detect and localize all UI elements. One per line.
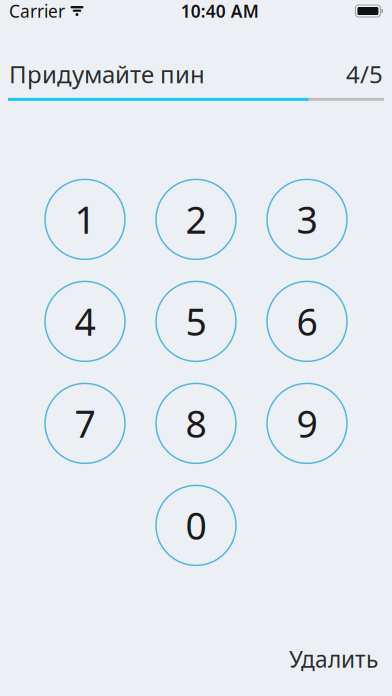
button[interactable]: 9 bbox=[267, 383, 347, 463]
staticText: Удалить bbox=[289, 644, 378, 674]
button[interactable]: 6 bbox=[267, 281, 347, 361]
staticText: Придумайте пин bbox=[9, 58, 205, 90]
staticText: 4/5 bbox=[346, 58, 383, 90]
staticText: 10:40 AM bbox=[181, 0, 259, 22]
staticText: Carrier bbox=[9, 0, 65, 22]
staticText: 7 bbox=[74, 399, 95, 448]
button[interactable]: 4 bbox=[45, 281, 125, 361]
button[interactable]: 3 bbox=[267, 179, 347, 259]
staticText: 1 bbox=[74, 195, 95, 244]
staticText: 2 bbox=[185, 195, 206, 244]
staticText: 8 bbox=[185, 399, 206, 448]
button[interactable]: 0 bbox=[156, 485, 236, 565]
staticText: 3 bbox=[296, 195, 317, 244]
button[interactable]: Удалить bbox=[283, 638, 384, 680]
staticText: 5 bbox=[185, 297, 206, 346]
button[interactable]: 5 bbox=[156, 281, 236, 361]
staticText: 0 bbox=[185, 501, 206, 550]
button[interactable]: 8 bbox=[156, 383, 236, 463]
staticText: 4 bbox=[74, 297, 95, 346]
staticText: 6 bbox=[296, 297, 317, 346]
staticText: 9 bbox=[296, 399, 317, 448]
button[interactable]: 1 bbox=[45, 179, 125, 259]
button[interactable]: 7 bbox=[45, 383, 125, 463]
button[interactable]: 2 bbox=[156, 179, 236, 259]
